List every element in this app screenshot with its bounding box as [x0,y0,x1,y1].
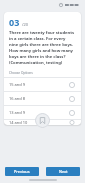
staticText: Choose Options [9,71,33,75]
button[interactable]: Previous [5,167,39,176]
button[interactable]: 14 and 10 [4,120,81,125]
staticText: There are twenty four students in a cert… [9,30,75,66]
staticText: 03 [9,16,20,28]
staticText: 14 and 10 [9,120,28,125]
button[interactable]: 13 and 9 [4,106,81,120]
staticText: 16 and 8 [9,96,26,101]
button[interactable]: Bookmark question [35,113,50,128]
button[interactable]: Next [46,167,80,176]
button[interactable]: 15 and 9 [4,78,81,92]
staticText: Next [59,169,68,174]
staticText: 13 and 9 [9,110,26,115]
button[interactable]: 16 and 8 [4,92,81,106]
staticText: Previous [14,169,30,174]
staticText: /20 [22,22,29,27]
staticText: 15 and 9 [9,82,26,87]
